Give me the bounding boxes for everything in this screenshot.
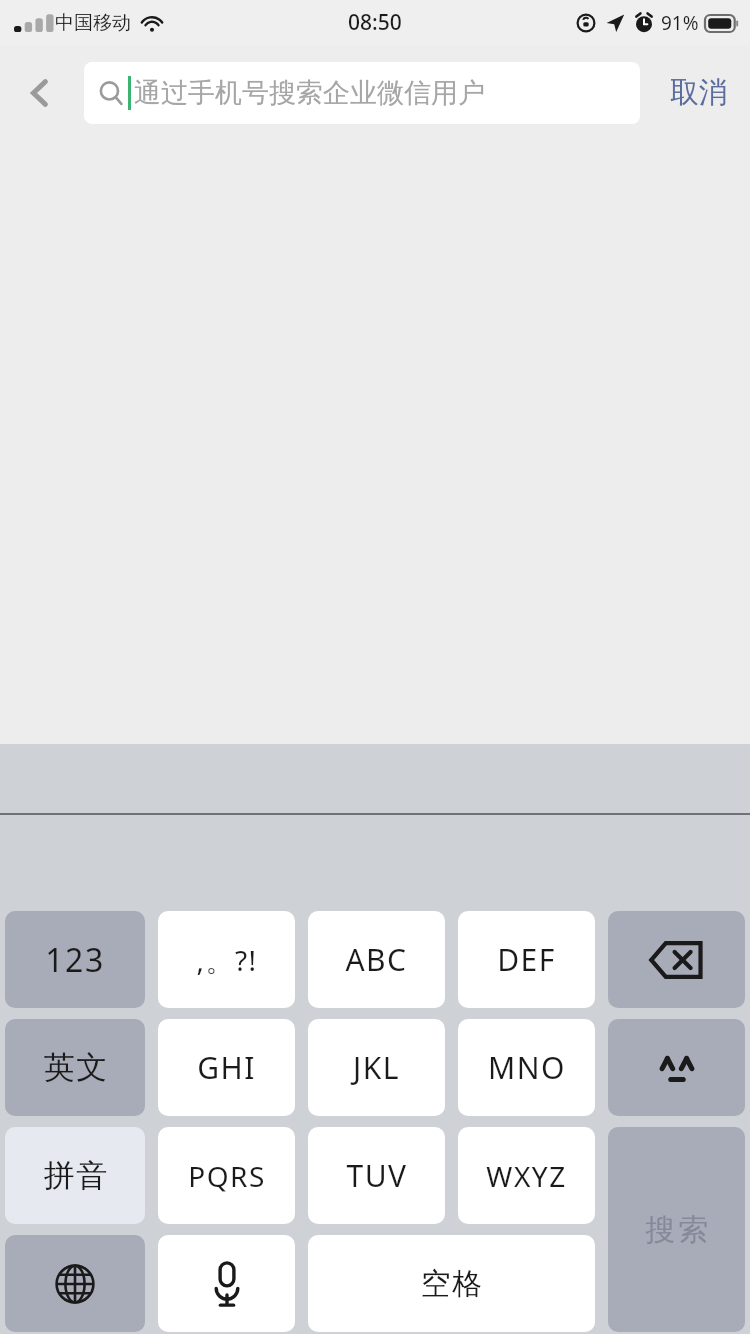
staticText: 通过手机号搜索企业微信用户: [134, 76, 485, 110]
button[interactable]: Switch keyboard: [5, 1235, 145, 1332]
staticText: 搜索: [644, 1211, 710, 1249]
staticText: JKL: [353, 1047, 400, 1088]
staticText: PQRS: [188, 1157, 266, 1195]
button[interactable]: MNO: [458, 1019, 595, 1116]
button[interactable]: DEF: [458, 911, 595, 1008]
staticText: ABC: [345, 939, 408, 980]
button[interactable]: 123: [5, 911, 145, 1008]
button[interactable]: PQRS: [158, 1127, 295, 1224]
button[interactable]: Emoji: [608, 1019, 745, 1116]
button[interactable]: JKL: [308, 1019, 445, 1116]
staticText: DEF: [497, 939, 556, 980]
button[interactable]: Back: [0, 45, 80, 140]
staticText: 取消: [670, 74, 728, 111]
button[interactable]: Backspace: [608, 911, 745, 1008]
button[interactable]: 取消: [662, 64, 736, 121]
staticText: MNO: [488, 1047, 566, 1088]
button[interactable]: ABC: [308, 911, 445, 1008]
staticText: TUV: [346, 1155, 408, 1196]
button[interactable]: WXYZ: [458, 1127, 595, 1224]
button[interactable]: Voice input: [158, 1235, 295, 1332]
staticText: 英文: [43, 1048, 108, 1087]
staticText: GHI: [197, 1047, 256, 1088]
button[interactable]: 通过手机号搜索企业微信用户: [84, 62, 640, 124]
staticText: WXYZ: [486, 1157, 567, 1195]
staticText: 91%: [661, 10, 699, 36]
button[interactable]: 搜索: [608, 1127, 745, 1332]
button[interactable]: 英文: [5, 1019, 145, 1116]
staticText: 123: [45, 938, 105, 982]
button[interactable]: GHI: [158, 1019, 295, 1116]
button[interactable]: TUV: [308, 1127, 445, 1224]
staticText: 空格: [420, 1265, 483, 1303]
button[interactable]: ,。?!: [158, 911, 295, 1008]
staticText: 中国移动: [55, 11, 131, 35]
staticText: 08:50: [348, 8, 402, 37]
button[interactable]: 空格: [308, 1235, 595, 1332]
button[interactable]: 拼音: [5, 1127, 145, 1224]
staticText: 拼音: [43, 1156, 108, 1195]
staticText: ,。?!: [196, 941, 258, 979]
